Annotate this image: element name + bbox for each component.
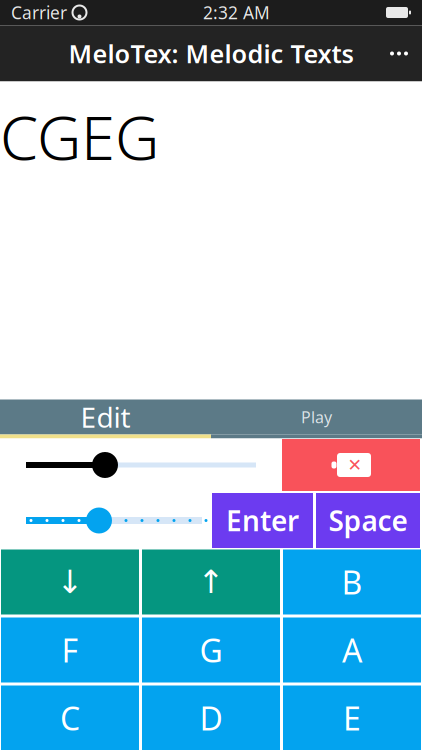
staticText: ↓: [56, 564, 83, 600]
staticText: A: [342, 629, 362, 671]
staticText: D: [199, 697, 222, 739]
button[interactable]: Edit: [0, 399, 211, 434]
staticText: 2:32 AM: [203, 1, 270, 24]
button[interactable]: Octave up: [142, 549, 280, 614]
staticText: ↑: [197, 564, 224, 600]
button[interactable]: Delete: [282, 439, 420, 491]
staticText: Space: [328, 502, 407, 539]
staticText: B: [341, 561, 362, 603]
staticText: Carrier: [11, 1, 67, 24]
button[interactable]: C: [1, 685, 139, 750]
staticText: C: [60, 697, 80, 739]
staticText: Play: [301, 406, 332, 428]
staticText: ✕: [347, 455, 362, 475]
button[interactable]: G: [142, 617, 280, 682]
staticText: Enter: [226, 502, 299, 539]
staticText: CGEG: [0, 95, 159, 177]
staticText: Edit: [80, 398, 130, 436]
button[interactable]: More options: [376, 25, 422, 81]
button[interactable]: E: [283, 685, 421, 750]
button[interactable]: A: [283, 617, 421, 682]
staticText: F: [61, 629, 78, 671]
staticText: MeloTex: Melodic Texts: [68, 37, 353, 70]
button[interactable]: Octave down: [1, 549, 139, 614]
button[interactable]: Play: [211, 399, 422, 434]
staticText: G: [199, 629, 222, 671]
button[interactable]: B: [283, 549, 421, 614]
button[interactable]: Space: [316, 493, 420, 548]
staticText: E: [343, 697, 361, 739]
button[interactable]: D: [142, 685, 280, 750]
button[interactable]: F: [1, 617, 139, 682]
button[interactable]: Enter: [212, 493, 313, 548]
